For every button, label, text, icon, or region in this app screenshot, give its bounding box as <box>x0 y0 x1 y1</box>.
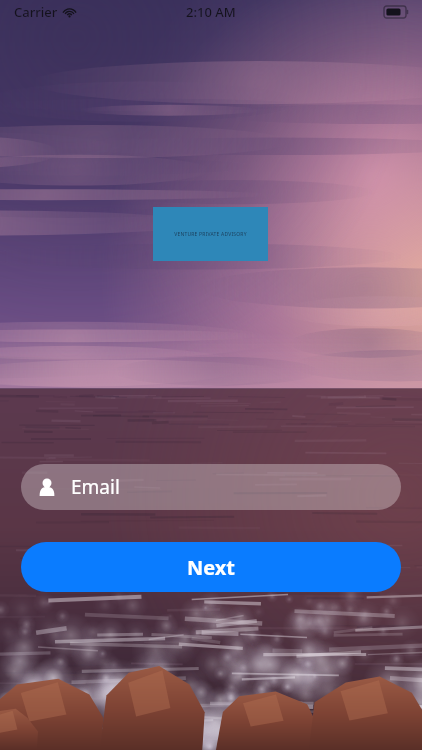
staticText: VENTURE PRIVATE ADVISORY <box>174 231 247 238</box>
button[interactable]: VENTURE PRIVATE ADVISORY <box>153 207 268 261</box>
staticText: Next <box>187 554 236 581</box>
staticText: 2:10 AM <box>186 3 236 21</box>
staticText: Carrier <box>14 3 58 21</box>
staticText: Email <box>71 474 120 500</box>
button[interactable]: Email <box>21 464 401 510</box>
button[interactable]: Next <box>21 542 401 592</box>
